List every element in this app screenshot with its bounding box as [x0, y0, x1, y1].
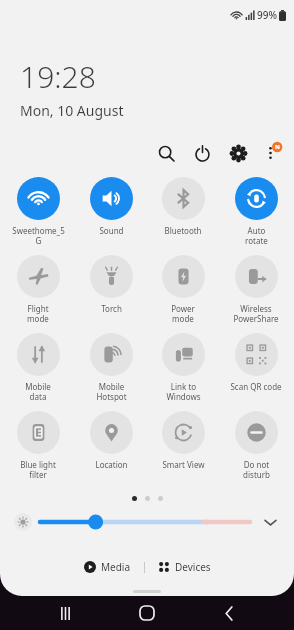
staticText: 19:28 [20, 56, 96, 97]
button[interactable]: Flight mode [4, 254, 72, 332]
button[interactable]: Location [77, 410, 145, 488]
button[interactable]: Brightness [40, 512, 250, 532]
button[interactable]: Devices [152, 560, 217, 574]
staticText: Do not disturb [243, 459, 270, 480]
button[interactable]: Smart View [149, 410, 217, 488]
button[interactable]: Power mode [149, 254, 217, 332]
staticText: Flight mode [27, 303, 49, 324]
button[interactable]: Sound [77, 176, 145, 254]
button[interactable]: Media [78, 560, 137, 574]
button[interactable]: Brightness settings [14, 513, 32, 531]
button[interactable]: Settings [225, 140, 251, 166]
button[interactable]: Power off [189, 140, 215, 166]
staticText: Mobile Hotspot [96, 381, 127, 402]
button[interactable]: Mobile Hotspot [77, 332, 145, 410]
staticText: Blue light filter [20, 459, 56, 480]
staticText: 99% [257, 8, 277, 22]
button[interactable]: Sweethome_5 G [4, 176, 72, 254]
button[interactable]: Auto rotate [222, 176, 290, 254]
button[interactable]: Blue light filter [4, 410, 72, 488]
button[interactable]: Recent apps [48, 596, 82, 630]
staticText: Location [95, 459, 128, 470]
staticText: Bluetooth [164, 225, 202, 236]
staticText: Sweethome_5 G [12, 225, 65, 246]
button[interactable]: Search [153, 140, 179, 166]
staticText: Link to Windows [166, 381, 201, 402]
staticText: N [275, 143, 280, 151]
button[interactable]: Do not disturb [222, 410, 290, 488]
staticText: Power mode [171, 303, 195, 324]
button[interactable]: Mobile data [4, 332, 72, 410]
staticText: Torch [101, 303, 122, 314]
button[interactable]: Expand brightness [260, 512, 280, 532]
staticText: Scan QR code [230, 381, 282, 392]
button[interactable]: More options [259, 140, 285, 166]
staticText: Media [101, 560, 131, 574]
staticText: Devices [175, 560, 211, 574]
staticText: Mon, 10 August [20, 101, 124, 120]
staticText: Wireless PowerShare [233, 303, 279, 324]
button[interactable]: Home [130, 596, 164, 630]
button[interactable]: Bluetooth [149, 176, 217, 254]
staticText: Auto rotate [245, 225, 268, 246]
button[interactable]: Torch [77, 254, 145, 332]
button[interactable]: Back [212, 596, 246, 630]
staticText: Mobile data [25, 381, 51, 402]
button[interactable]: Wireless PowerShare [222, 254, 290, 332]
button[interactable]: Scan QR code [222, 332, 290, 410]
staticText: Smart View [162, 459, 205, 470]
button[interactable]: Link to Windows [149, 332, 217, 410]
staticText: Sound [99, 225, 124, 236]
